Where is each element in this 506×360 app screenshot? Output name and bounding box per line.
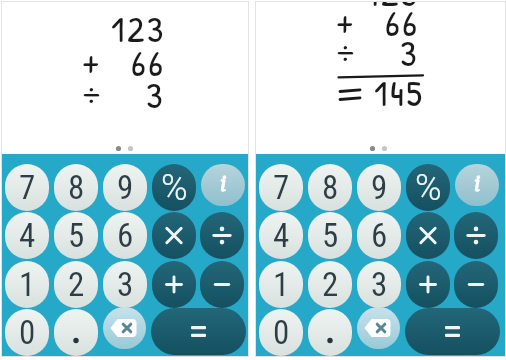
staticText: 66 — [385, 1, 420, 47]
button[interactable]: 8 — [308, 164, 352, 211]
staticText: 66 — [131, 37, 166, 87]
staticText: 8 — [68, 168, 85, 207]
staticText: % — [415, 167, 442, 209]
staticText: 7 — [19, 168, 36, 207]
button[interactable] — [103, 307, 146, 349]
staticText: 0 — [273, 313, 290, 352]
button[interactable] — [200, 261, 244, 308]
button[interactable] — [200, 212, 244, 259]
button[interactable]: 6 — [357, 212, 401, 259]
button[interactable] — [54, 309, 98, 356]
staticText: 9 — [371, 168, 388, 207]
staticText: ÷ — [336, 24, 356, 74]
button[interactable]: 4 — [259, 212, 303, 259]
staticText: 7 — [273, 168, 290, 207]
button[interactable]: 7 — [259, 164, 303, 211]
button[interactable]: 6 — [103, 212, 147, 259]
button[interactable]: 7 — [5, 164, 49, 211]
staticText: 9 — [117, 168, 134, 207]
button[interactable] — [406, 261, 450, 308]
button[interactable]: 1 — [259, 261, 303, 308]
button[interactable]: 1 — [5, 261, 49, 308]
button[interactable]: 5 — [308, 212, 352, 259]
staticText: 2 — [322, 265, 339, 304]
staticText: % — [161, 167, 188, 209]
staticText: 0 — [19, 313, 36, 352]
button[interactable] — [406, 212, 450, 259]
button[interactable]: 0 — [259, 309, 303, 356]
button[interactable]: 2 — [54, 261, 98, 308]
staticText: 6 — [371, 216, 388, 255]
button[interactable]: 4 — [5, 212, 49, 259]
staticText: i — [220, 171, 227, 199]
button[interactable] — [454, 212, 498, 259]
button[interactable]: 9 — [357, 164, 401, 211]
staticText: i — [474, 171, 481, 199]
button[interactable]: % — [406, 164, 450, 211]
button[interactable] — [151, 308, 246, 355]
staticText: 145 — [374, 67, 425, 117]
button[interactable] — [405, 308, 500, 355]
button[interactable]: 3 — [357, 261, 401, 308]
button[interactable]: 8 — [54, 164, 98, 211]
button[interactable] — [152, 261, 196, 308]
button[interactable]: i — [455, 164, 499, 206]
staticText: 3 — [400, 27, 420, 77]
button[interactable] — [152, 212, 196, 259]
button[interactable]: 3 — [103, 261, 147, 308]
staticText: 123 — [111, 3, 166, 53]
staticText: + — [82, 34, 100, 84]
staticText: 5 — [322, 216, 339, 255]
staticText: 3 — [146, 69, 166, 119]
button[interactable]: 2 — [308, 261, 352, 308]
button[interactable] — [308, 309, 352, 356]
staticText: 2 — [68, 265, 85, 304]
staticText: 4 — [19, 216, 36, 255]
button[interactable]: % — [152, 164, 196, 211]
button[interactable]: 9 — [103, 164, 147, 211]
staticText: + — [336, 1, 354, 44]
staticText: 1 — [273, 265, 290, 304]
button[interactable] — [357, 307, 400, 349]
button[interactable]: 5 — [54, 212, 98, 259]
staticText: 3 — [117, 265, 134, 304]
staticText: 123 — [365, 1, 420, 17]
staticText: ÷ — [82, 66, 102, 116]
staticText: 6 — [117, 216, 134, 255]
staticText: 8 — [322, 168, 339, 207]
button[interactable]: 0 — [5, 309, 49, 356]
staticText: 4 — [273, 216, 290, 255]
staticText: 3 — [371, 265, 388, 304]
button[interactable] — [454, 261, 498, 308]
staticText: 5 — [68, 216, 85, 255]
staticText: 1 — [19, 265, 36, 304]
button[interactable]: i — [201, 164, 245, 206]
